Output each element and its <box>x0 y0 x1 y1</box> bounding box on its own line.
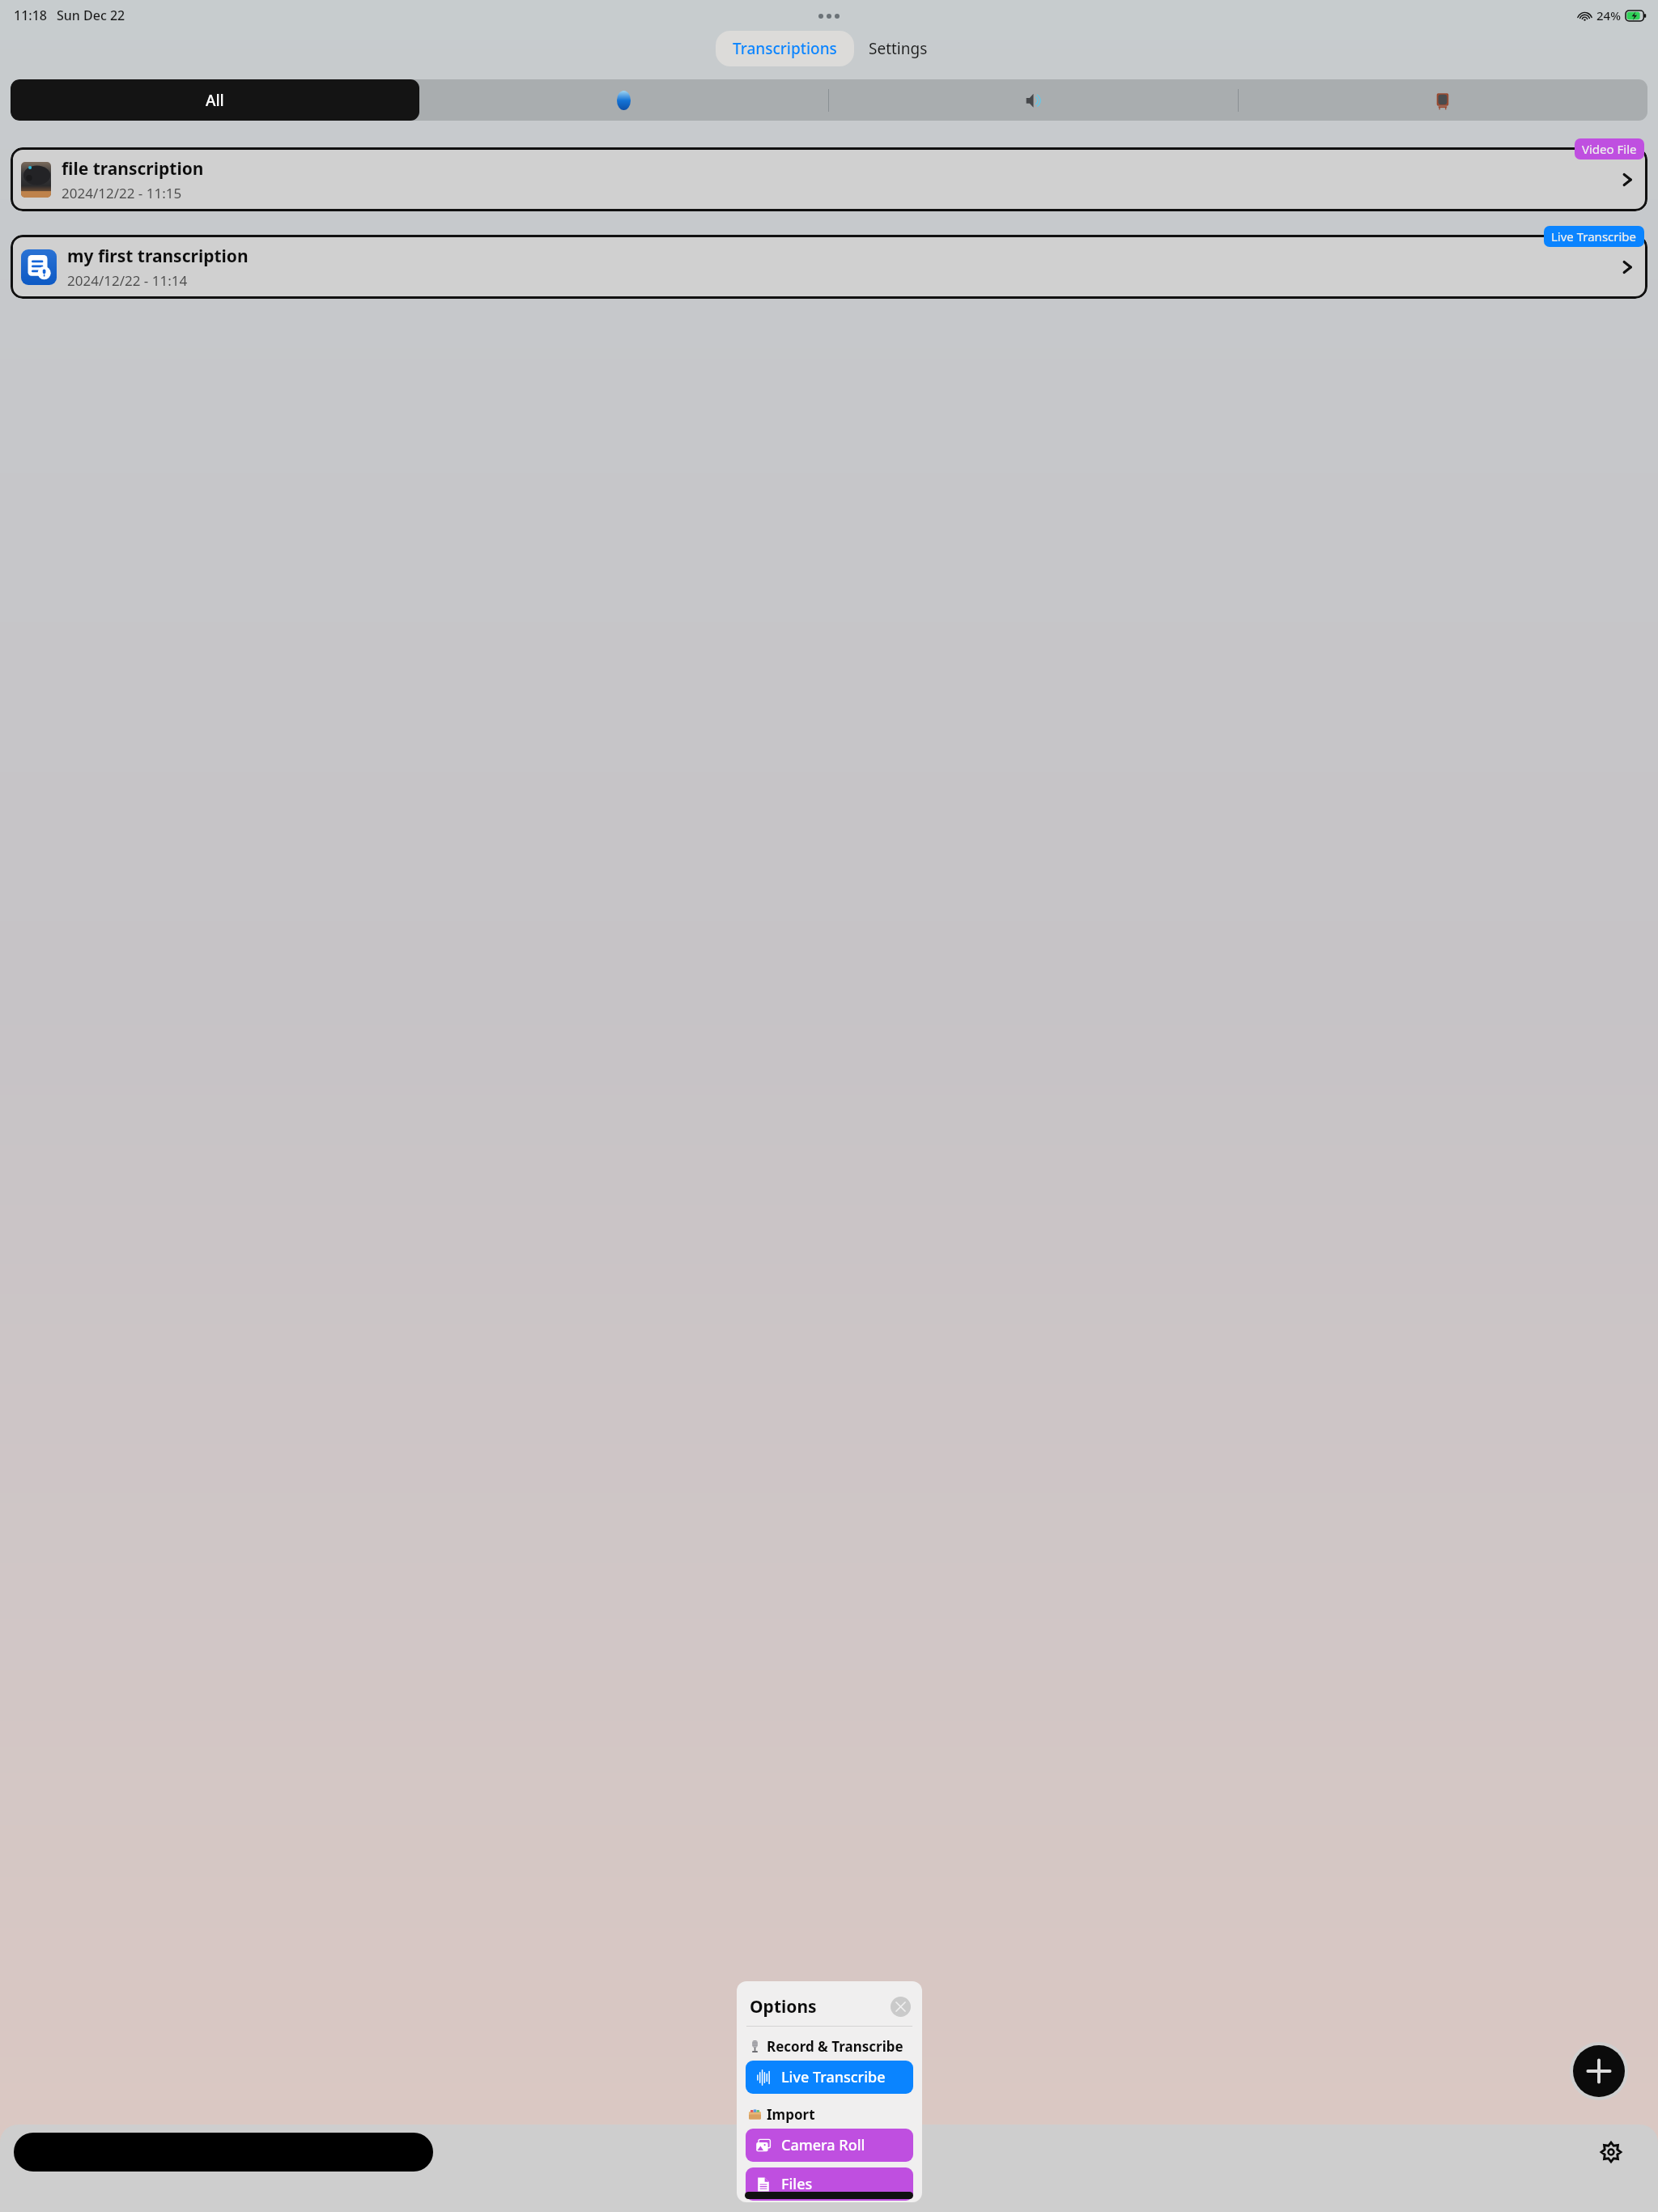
button[interactable]: Transcriptions <box>716 31 854 66</box>
staticText: Record & Transcribe <box>767 2037 903 2056</box>
button[interactable]: All <box>11 79 419 121</box>
staticText: Import <box>767 2105 815 2124</box>
staticText: Transcriptions <box>733 38 837 59</box>
staticText: Video File <box>1582 141 1637 157</box>
button[interactable] <box>419 79 828 121</box>
button[interactable]: Live Transcribe <box>746 2061 913 2094</box>
button[interactable] <box>828 79 1238 121</box>
button[interactable]: my first transcription <box>11 235 1647 299</box>
staticText: my first transcription <box>67 245 249 268</box>
staticText: 24% <box>1596 7 1621 23</box>
button[interactable]: Settings <box>1593 2134 1629 2170</box>
staticText: Options <box>750 1995 817 2018</box>
staticText: Camera Roll <box>781 2135 865 2155</box>
staticText: Files <box>781 2174 813 2194</box>
staticText: All <box>206 90 224 111</box>
button[interactable]: file transcription <box>11 147 1647 211</box>
button[interactable]: Camera Roll <box>746 2129 913 2162</box>
button[interactable]: Settings <box>854 31 942 66</box>
button[interactable]: Files <box>746 2167 913 2201</box>
staticText: Sun Dec 22 <box>57 6 125 24</box>
staticText: 2024/12/22 - 11:15 <box>62 184 182 202</box>
staticText: Live Transcribe <box>781 2067 886 2087</box>
button[interactable]: Add transcription <box>1573 2045 1625 2097</box>
staticText: Live Transcribe <box>1551 228 1637 245</box>
button[interactable] <box>14 2133 433 2172</box>
staticText: 2024/12/22 - 11:14 <box>67 271 188 290</box>
staticText: 11:18 <box>14 6 47 24</box>
staticText: file transcription <box>62 157 204 181</box>
button[interactable] <box>1238 79 1647 121</box>
staticText: Settings <box>869 38 928 59</box>
button[interactable]: Close <box>891 1997 911 2017</box>
